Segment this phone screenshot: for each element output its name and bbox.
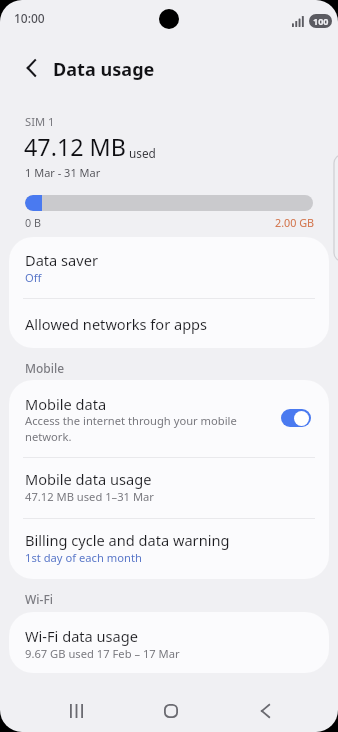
button[interactable]: Billing cycle and data warning [9,519,329,579]
staticText: Wi-Fi [25,591,53,607]
button[interactable]: Recent apps [56,691,96,731]
staticText: 1st day of each month [25,550,142,565]
staticText: Billing cycle and data warning [25,530,230,550]
staticText: SIM 1 [25,114,55,129]
button[interactable]: Data saver [9,237,329,298]
staticText: 10:00 [14,10,45,26]
button[interactable]: Wi-Fi data usage [9,612,329,673]
staticText: used [129,145,156,161]
staticText: 1 Mar - 31 Mar [25,165,101,180]
staticText: 47.12 MB [24,131,126,163]
button[interactable]: Back [9,46,53,90]
staticText: Data usage [53,57,155,82]
staticText: Data saver [25,250,98,270]
button[interactable]: Mobile data [9,380,329,457]
staticText: Mobile data usage [25,469,152,489]
staticText: Access the internet through your mobile … [25,413,239,444]
staticText: 100 [313,15,329,27]
staticText: Wi-Fi data usage [25,626,138,646]
staticText: Mobile data [25,394,107,414]
staticText: 0 B [25,215,42,230]
staticText: Allowed networks for apps [25,314,208,334]
button[interactable]: Mobile data usage [9,458,329,518]
staticText: Mobile [25,360,65,376]
staticText: 9.67 GB used 17 Feb – 17 Mar [25,646,180,661]
staticText: 47.12 MB used 1–31 Mar [25,489,154,504]
button[interactable]: Allowed networks for apps [9,299,329,348]
button[interactable]: Back [245,691,285,731]
staticText: Off [25,270,42,285]
button[interactable]: Home [151,691,191,731]
staticText: 2.00 GB [275,215,315,230]
